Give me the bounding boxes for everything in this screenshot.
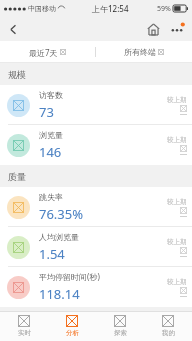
staticText: 118.14 xyxy=(39,285,80,303)
staticText: 平均停留时间(秒) xyxy=(39,271,100,282)
button[interactable]: Home xyxy=(142,18,164,40)
staticText: 较上期 xyxy=(167,198,187,206)
staticText: 最近7天 xyxy=(29,47,58,58)
staticText: 73 xyxy=(39,103,54,121)
button[interactable]: 实时 xyxy=(0,311,48,341)
staticText: 跳失率 xyxy=(39,192,63,202)
button[interactable]: 我的 xyxy=(144,311,192,341)
button[interactable]: Back xyxy=(0,17,26,41)
staticText: 1.54 xyxy=(39,245,65,263)
staticText: 我的 xyxy=(162,329,175,337)
button[interactable]: 人均浏览量 xyxy=(0,227,192,267)
staticText: 分析 xyxy=(66,329,79,337)
staticText: 浏览量 xyxy=(39,130,63,140)
staticText: 较上期 xyxy=(167,96,187,104)
button[interactable]: 探索 xyxy=(96,311,144,341)
button[interactable]: 分析 xyxy=(48,311,96,341)
button[interactable]: 最近7天 xyxy=(0,41,95,63)
staticText: 人均浏览量 xyxy=(39,232,79,242)
staticText: 59% xyxy=(157,4,171,14)
button[interactable]: 平均停留时间(秒) xyxy=(0,267,192,307)
staticText: 所有终端 xyxy=(124,47,156,57)
staticText: 上午12:54 xyxy=(92,3,129,14)
staticText: 探索 xyxy=(114,329,127,337)
staticText: 规模 xyxy=(8,69,26,80)
button[interactable]: 访客数 xyxy=(0,85,192,125)
staticText: 中国移动 xyxy=(28,4,56,13)
staticText: 76.35% xyxy=(39,205,84,223)
staticText: 较上期 xyxy=(167,136,187,144)
button[interactable]: 所有终端 xyxy=(96,41,192,63)
staticText: 质量 xyxy=(8,171,26,182)
staticText: 较上期 xyxy=(167,278,187,286)
staticText: 146 xyxy=(39,143,62,161)
button[interactable]: 浏览量 xyxy=(0,125,192,165)
staticText: 较上期 xyxy=(167,238,187,246)
button[interactable]: 跳失率 xyxy=(0,187,192,227)
staticText: 实时 xyxy=(18,329,31,337)
staticText: 访客数 xyxy=(39,90,63,100)
button[interactable]: More options xyxy=(166,18,188,40)
